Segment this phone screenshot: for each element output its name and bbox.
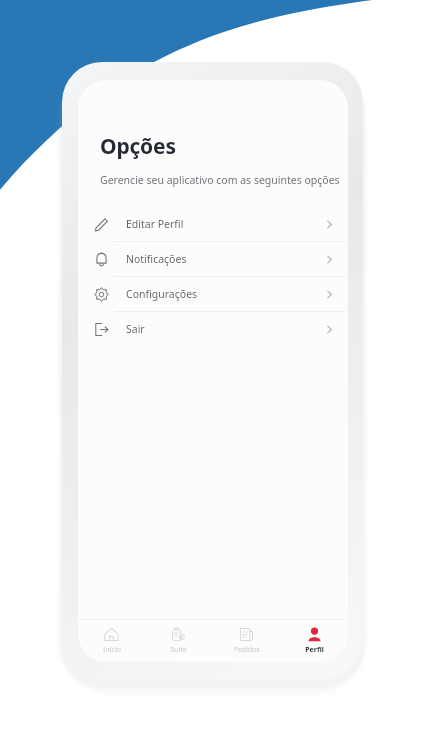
button[interactable]: Pedidos — [212, 620, 280, 662]
staticText: Perfil — [305, 645, 324, 655]
staticText: Gerencie seu aplicativo com as seguintes… — [100, 173, 340, 187]
button[interactable]: Editar Perfil — [78, 207, 348, 241]
button[interactable]: Perfil — [280, 620, 348, 662]
staticText: Notificações — [126, 252, 187, 266]
staticText: Configurações — [126, 287, 198, 301]
staticText: Suite — [170, 645, 187, 655]
button[interactable]: Sair — [78, 312, 348, 346]
button[interactable]: Suite — [145, 620, 212, 662]
staticText: Opções — [100, 132, 176, 161]
button[interactable]: Início — [78, 620, 145, 662]
staticText: Editar Perfil — [126, 217, 184, 231]
staticText: Início — [103, 645, 121, 655]
staticText: Pedidos — [233, 645, 260, 655]
staticText: Sair — [126, 322, 145, 336]
button[interactable]: Configurações — [78, 277, 348, 311]
button[interactable]: Notificações — [78, 242, 348, 276]
